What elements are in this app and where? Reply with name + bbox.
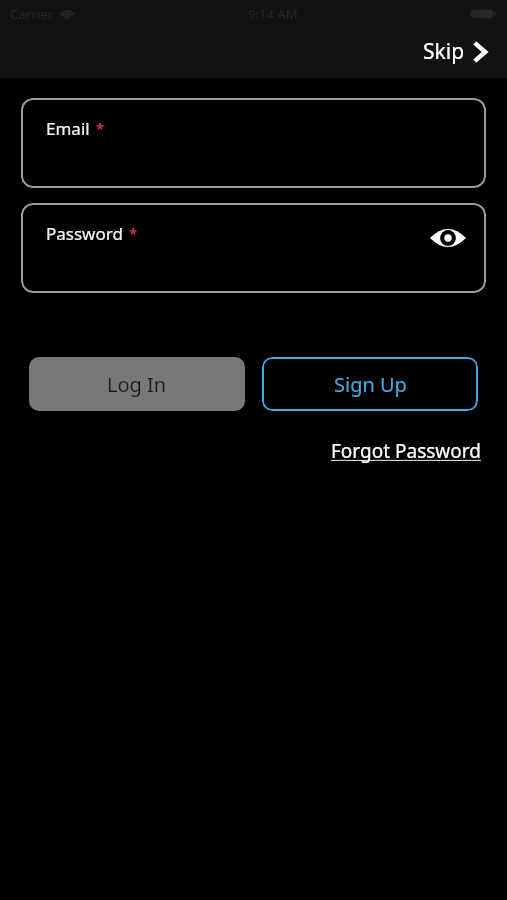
staticText: *: [129, 223, 138, 243]
button[interactable]: Forgot Password: [327, 435, 485, 467]
staticText: Log In: [107, 371, 167, 398]
button[interactable]: Log In: [29, 357, 245, 411]
staticText: Carrier: [10, 5, 54, 23]
button[interactable]: Email: [21, 98, 486, 188]
staticText: Forgot Password: [331, 438, 481, 464]
button[interactable]: Sign Up: [262, 357, 478, 411]
button[interactable]: Skip: [419, 35, 491, 68]
staticText: *: [96, 118, 105, 138]
button[interactable]: Password: [21, 203, 486, 293]
staticText: Password: [46, 222, 123, 245]
staticText: Email: [46, 117, 90, 140]
staticText: 9:14 AM: [248, 5, 298, 23]
button[interactable]: Show password: [428, 218, 468, 258]
staticText: Skip: [423, 37, 465, 66]
staticText: Sign Up: [334, 371, 407, 398]
